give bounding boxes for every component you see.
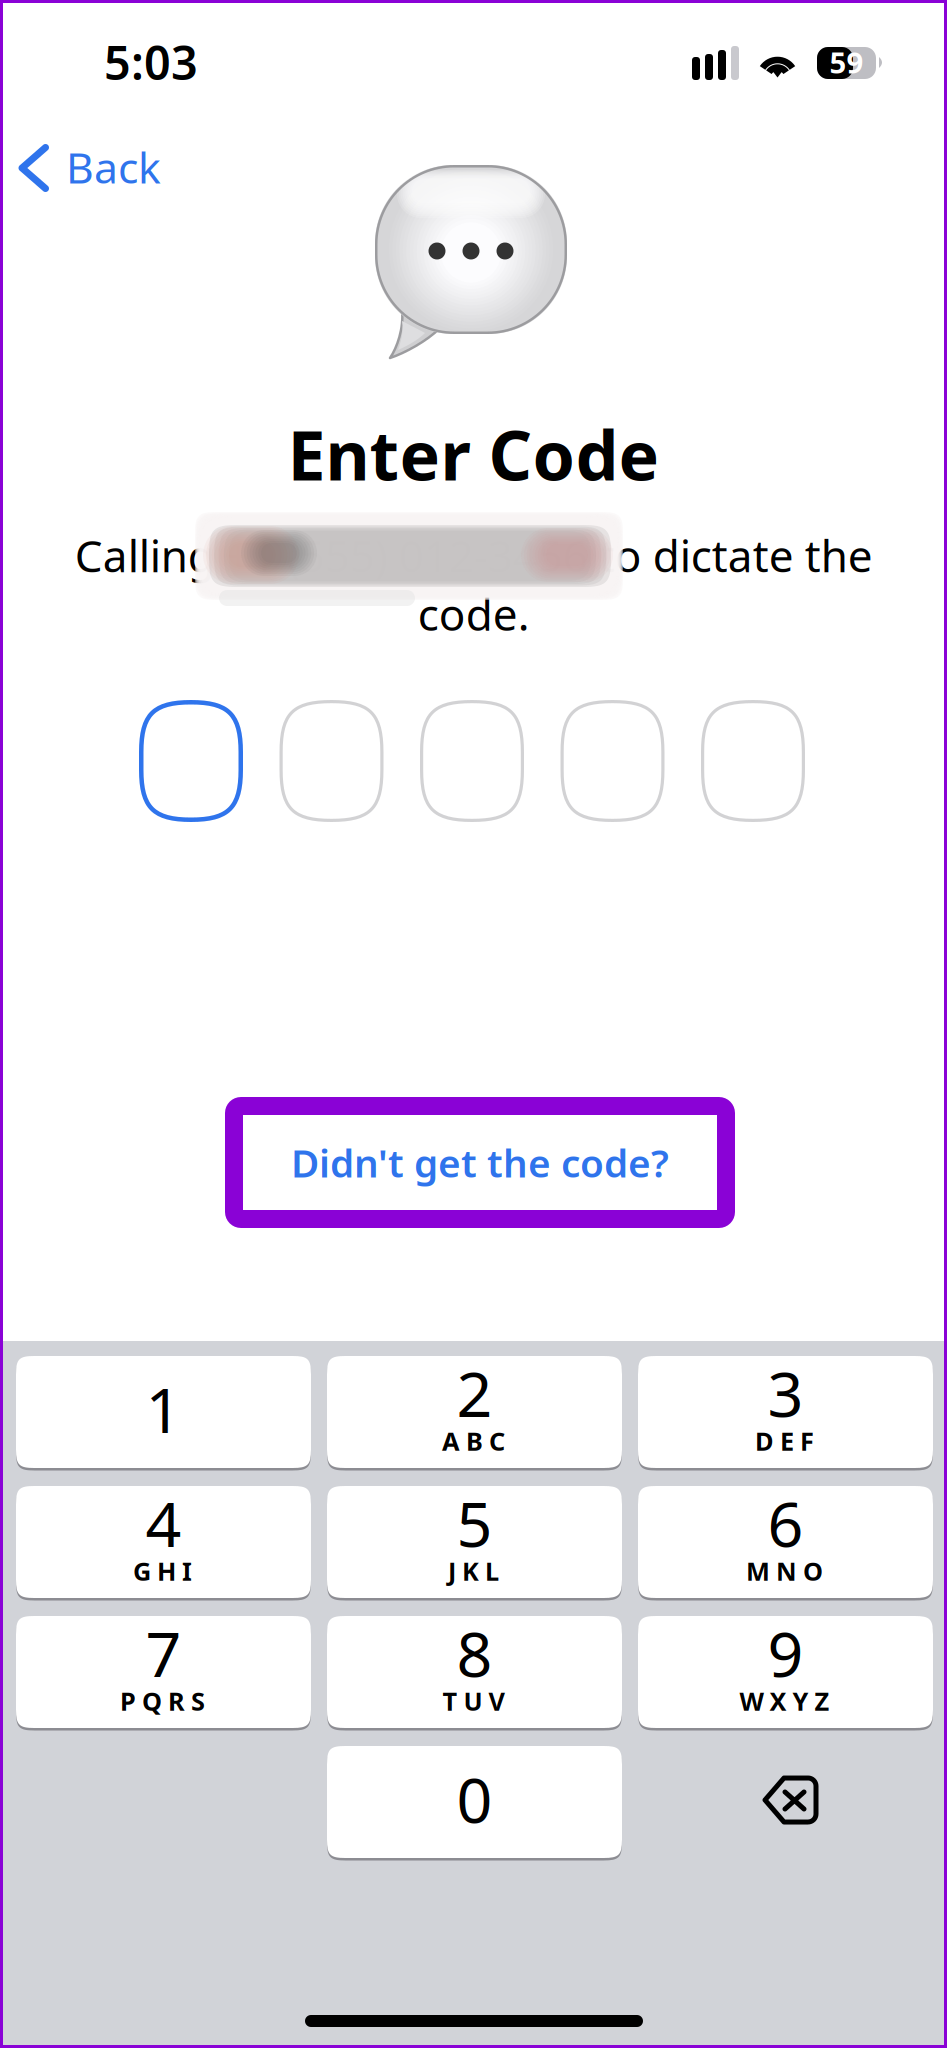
staticText: PQRS <box>120 1684 205 1718</box>
staticText: 59 <box>829 42 863 81</box>
button[interactable]: 7 <box>16 1616 311 1728</box>
staticText: TUV <box>442 1684 504 1718</box>
staticText: Didn't get the code? <box>291 1137 669 1188</box>
staticText: GHI <box>133 1554 192 1588</box>
staticText: WXYZ <box>739 1684 829 1718</box>
staticText: 4 <box>145 1481 181 1564</box>
staticText: MNO <box>746 1554 823 1588</box>
button[interactable]: 4 <box>16 1486 311 1598</box>
button[interactable]: Delete <box>638 1746 933 1858</box>
staticText: 7 <box>145 1611 181 1694</box>
staticText: 0 <box>456 1757 492 1840</box>
button[interactable]: 0 <box>327 1746 622 1858</box>
staticText: 8 <box>456 1611 492 1694</box>
button[interactable]: 6 <box>638 1486 933 1598</box>
staticText: Enter Code <box>287 409 659 499</box>
staticText: 5:03 <box>104 31 198 93</box>
button[interactable]: Back <box>4 128 185 208</box>
button[interactable]: 8 <box>327 1616 622 1728</box>
button[interactable]: 5 <box>327 1486 622 1598</box>
staticText: ABC <box>442 1424 505 1458</box>
staticText: 1 <box>145 1367 181 1450</box>
button[interactable]: 1 <box>16 1356 311 1468</box>
button[interactable]: 2 <box>327 1356 622 1468</box>
staticText: Calling +1 (555) 012-3456 to dictate the… <box>74 526 872 643</box>
button[interactable]: Didn't get the code? <box>225 1097 735 1228</box>
staticText: DEF <box>755 1424 814 1458</box>
staticText: 2 <box>456 1351 492 1434</box>
staticText: 3 <box>767 1351 803 1434</box>
staticText: 5 <box>456 1481 492 1564</box>
staticText: 6 <box>767 1481 803 1564</box>
staticText: JKL <box>448 1554 499 1588</box>
staticText: Back <box>66 139 161 195</box>
staticText: 9 <box>767 1611 803 1694</box>
button[interactable]: 3 <box>638 1356 933 1468</box>
button[interactable]: 9 <box>638 1616 933 1728</box>
